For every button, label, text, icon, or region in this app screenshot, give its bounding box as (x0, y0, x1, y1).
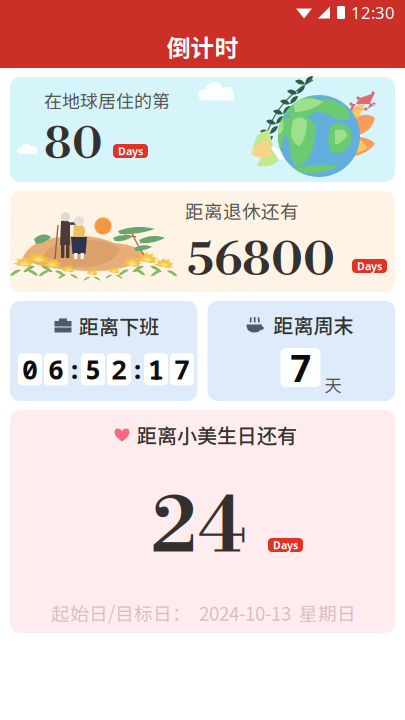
button[interactable]: 距离下班 (10, 301, 197, 401)
staticText: 天 (324, 372, 341, 397)
staticText: Days (118, 144, 143, 158)
staticText: 7 (289, 342, 311, 393)
staticText: 在地球居住的第 (44, 87, 170, 113)
staticText: 距离小美生日还有 (137, 420, 297, 449)
staticText: 距离退休还有 (185, 197, 299, 224)
staticText: : (130, 352, 145, 386)
staticText: 距离周末 (273, 310, 353, 339)
staticText: 56800 (187, 232, 335, 289)
staticText: 12:30 (351, 1, 395, 24)
button[interactable]: 在地球居住的第 (10, 77, 395, 182)
staticText: 7 (174, 351, 190, 387)
staticText: 2 (111, 351, 127, 387)
button[interactable]: 距离退休还有 (10, 191, 395, 292)
staticText: 0 (22, 351, 38, 387)
staticText: Days (357, 259, 382, 273)
staticText: 起始日/目标日： 2024-10-13 星期日 (51, 599, 356, 626)
staticText: : (67, 352, 82, 386)
staticText: Days (273, 538, 298, 552)
staticText: 倒计时 (166, 29, 238, 64)
staticText: 80 (44, 117, 103, 172)
staticText: 5 (85, 351, 101, 387)
button[interactable]: 距离小美生日还有 (10, 410, 395, 633)
staticText: 1 (148, 351, 164, 387)
staticText: 24 (151, 480, 247, 577)
staticText: 距离下班 (79, 311, 159, 340)
staticText: 6 (48, 351, 64, 387)
button[interactable]: 距离周末 (207, 301, 395, 401)
